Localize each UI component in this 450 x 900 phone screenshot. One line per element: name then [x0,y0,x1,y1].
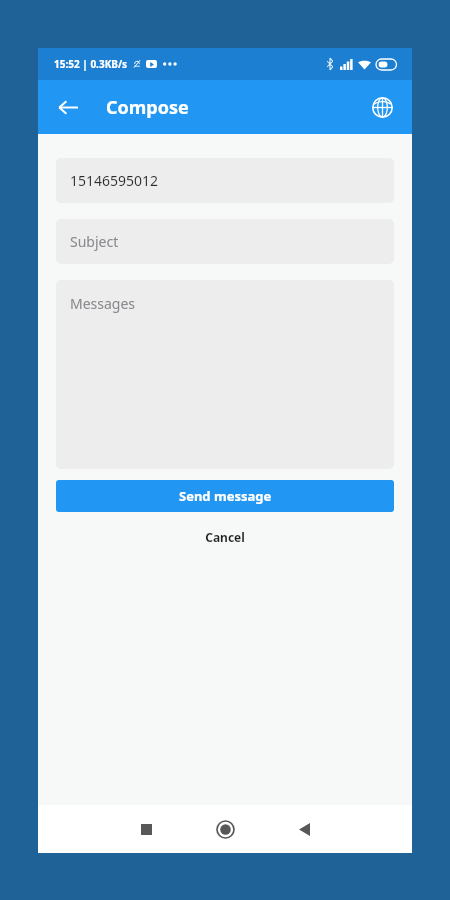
button[interactable]: 15146595012 [56,158,394,203]
button[interactable]: Recent apps [126,809,166,849]
button[interactable]: Back [46,85,90,129]
button[interactable]: Home [205,809,245,849]
staticText: Messages [70,294,136,313]
button[interactable]: Cancel [56,524,394,550]
staticText: Subject [70,232,119,251]
button[interactable]: Send message [56,480,394,512]
button[interactable]: Language [360,85,404,129]
button[interactable]: Messages [56,280,394,469]
button[interactable]: Subject [56,219,394,264]
staticText: 15:52 | 0.3KB/s [54,57,128,71]
staticText: Cancel [205,529,245,545]
staticText: Send message [179,487,272,505]
button[interactable]: Back [284,809,324,849]
staticText: Compose [106,95,189,120]
staticText: 15146595012 [70,171,159,190]
